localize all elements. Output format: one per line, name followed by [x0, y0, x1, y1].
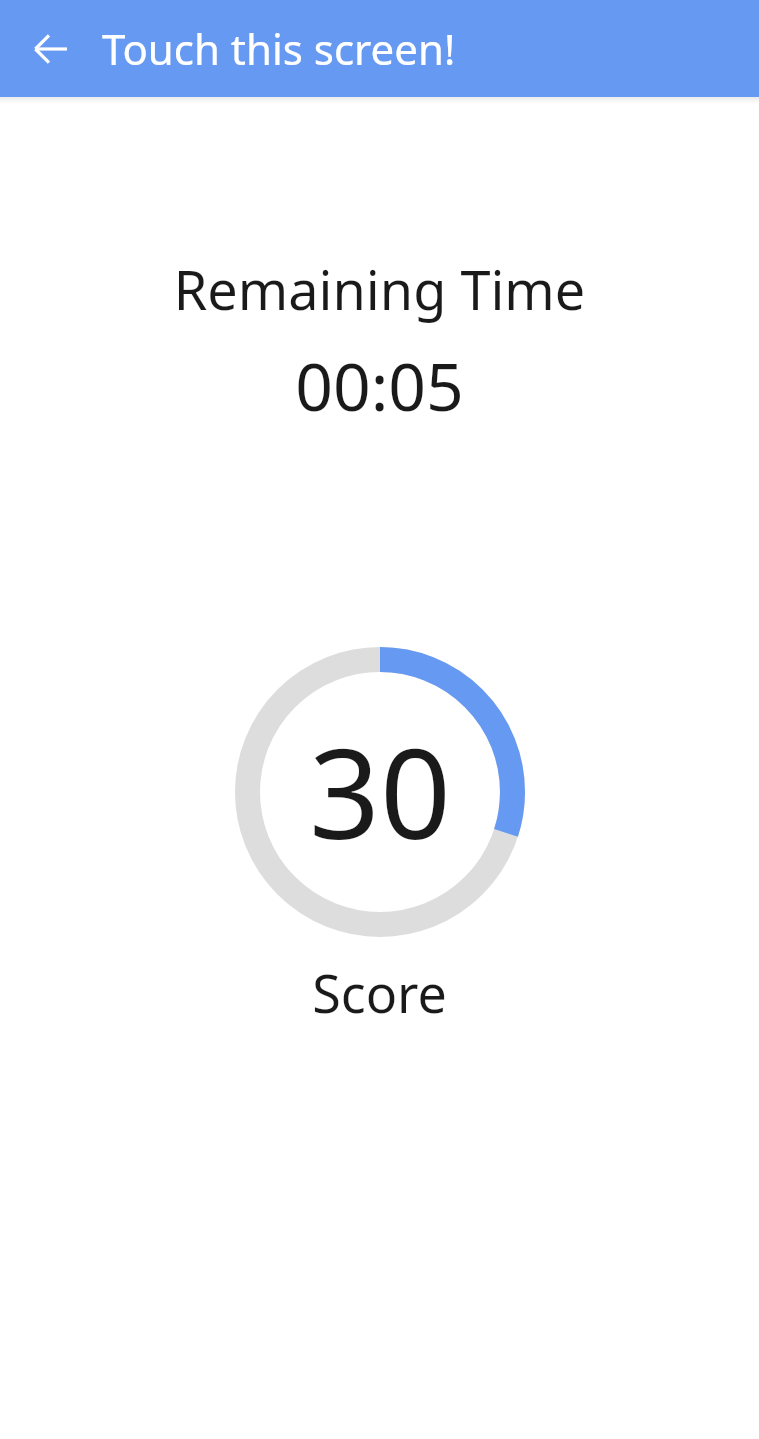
button[interactable]: Touch area: [0, 104, 759, 1439]
button[interactable]: Back: [0, 0, 102, 97]
staticText: 00:05: [0, 340, 759, 430]
staticText: Touch this screen!: [102, 20, 456, 77]
staticText: 30: [309, 706, 451, 875]
staticText: Remaining Time: [0, 252, 759, 326]
staticText: Score: [0, 957, 759, 1028]
